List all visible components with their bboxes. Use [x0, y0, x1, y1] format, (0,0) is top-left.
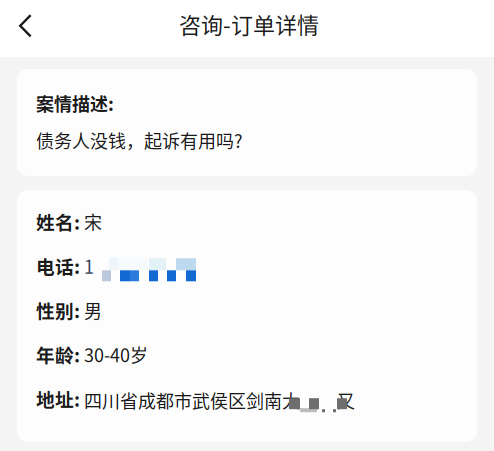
staticText: 咨询-订单详情: [179, 8, 319, 40]
staticText: 30-40岁: [84, 341, 148, 367]
staticText: 男: [84, 297, 102, 323]
staticText: 年龄:: [36, 341, 80, 368]
staticText: 性别:: [36, 297, 80, 324]
staticText: 债务人没钱，起诉有用吗?: [36, 127, 243, 153]
staticText: 又: [337, 387, 355, 413]
staticText: 1: [84, 253, 94, 279]
staticText: 四川省成都市武侯区剑南大: [84, 387, 300, 413]
staticText: 案情描述:: [36, 90, 114, 116]
staticText: 电话:: [36, 252, 80, 279]
staticText: 姓名:: [36, 208, 80, 235]
button[interactable]: Back: [3, 4, 47, 48]
staticText: 宋: [84, 208, 102, 235]
staticText: 地址:: [36, 385, 80, 412]
